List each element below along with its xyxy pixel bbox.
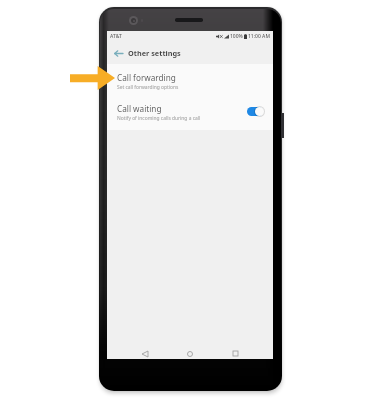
button[interactable]: Recent apps — [228, 348, 242, 359]
staticText: Call waiting — [117, 103, 162, 114]
button[interactable]: Back — [138, 348, 152, 359]
button[interactable]: Call waiting toggle — [247, 105, 263, 117]
staticText: Notify of incoming calls during a call — [117, 115, 201, 122]
staticText: AT&T — [110, 33, 122, 40]
button[interactable]: Back — [111, 46, 125, 60]
staticText: 100% — [230, 33, 243, 40]
button[interactable]: Call forwarding — [107, 66, 273, 97]
staticText: Other settings — [128, 48, 181, 58]
staticText: Set call forwarding options — [117, 84, 179, 91]
staticText: Call forwarding — [117, 72, 176, 83]
button[interactable]: Call waiting — [107, 97, 273, 128]
button[interactable]: Home — [183, 348, 197, 359]
staticText: 11:00 AM — [248, 33, 270, 40]
